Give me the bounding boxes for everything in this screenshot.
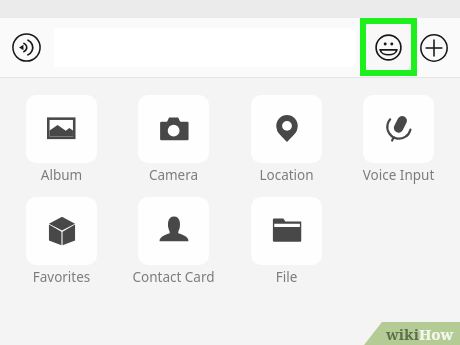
staticText: Contact Card bbox=[118, 268, 229, 286]
staticText: Camera bbox=[118, 166, 229, 184]
button[interactable]: Emoji bbox=[366, 24, 411, 70]
button[interactable]: Add attachment bbox=[418, 32, 449, 63]
staticText: wiki bbox=[386, 324, 419, 344]
button[interactable]: Camera bbox=[118, 95, 229, 184]
staticText: Favorites bbox=[6, 268, 117, 286]
button[interactable]: Location bbox=[231, 95, 342, 184]
staticText: Location bbox=[231, 166, 342, 184]
staticText: File bbox=[231, 268, 342, 286]
staticText: Voice Input bbox=[343, 166, 454, 184]
button[interactable]: Voice message bbox=[9, 30, 44, 65]
button[interactable]: File bbox=[231, 197, 342, 286]
button[interactable]: Contact Card bbox=[118, 197, 229, 286]
button[interactable]: Voice Input bbox=[343, 95, 454, 184]
button[interactable]: Favorites bbox=[6, 197, 117, 286]
staticText: How bbox=[419, 324, 454, 344]
staticText: Album bbox=[6, 166, 117, 184]
button[interactable]: Album bbox=[6, 95, 117, 184]
